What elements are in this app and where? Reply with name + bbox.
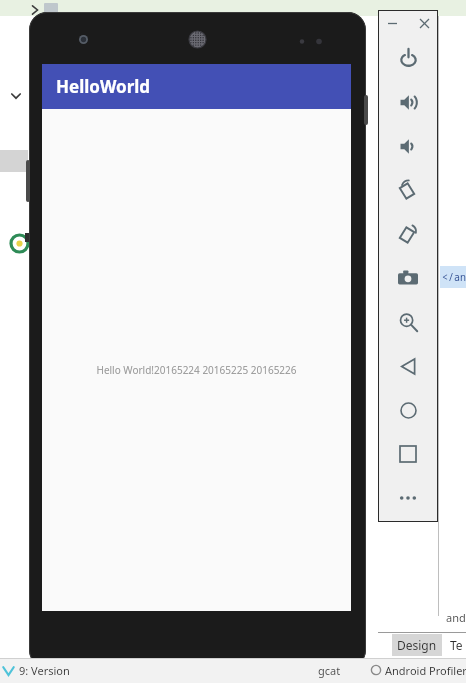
button[interactable]: Back <box>379 344 437 388</box>
button[interactable]: Rotate right <box>379 212 437 256</box>
button[interactable]: Close <box>416 15 432 31</box>
button[interactable]: 9: Version <box>2 661 70 679</box>
button[interactable]: Volume up <box>379 80 437 124</box>
button[interactable]: Minimize <box>384 15 400 31</box>
button[interactable]: Volume down <box>379 124 437 168</box>
button[interactable]: More <box>379 476 437 520</box>
staticText: </an <box>442 270 466 284</box>
button[interactable]: Zoom <box>379 300 437 344</box>
button[interactable]: Power <box>379 36 437 80</box>
button[interactable]: Take screenshot <box>379 256 437 300</box>
button[interactable]: Home <box>379 388 437 432</box>
button[interactable]: Android Profiler <box>370 661 466 679</box>
staticText: Android Profiler <box>385 663 466 678</box>
button[interactable]: gcat <box>318 663 341 678</box>
staticText: Design <box>397 637 437 653</box>
staticText: HelloWorld <box>56 75 151 98</box>
staticText: Te <box>450 637 463 653</box>
button[interactable]: Rotate left <box>379 168 437 212</box>
button[interactable]: Overview <box>379 432 437 476</box>
button[interactable]: Te <box>450 634 466 656</box>
staticText: and <box>446 610 466 625</box>
staticText: 9: Version <box>19 663 70 678</box>
staticText: Hello World!20165224 20165225 20165226 <box>96 363 297 377</box>
button[interactable]: Design <box>392 634 442 656</box>
